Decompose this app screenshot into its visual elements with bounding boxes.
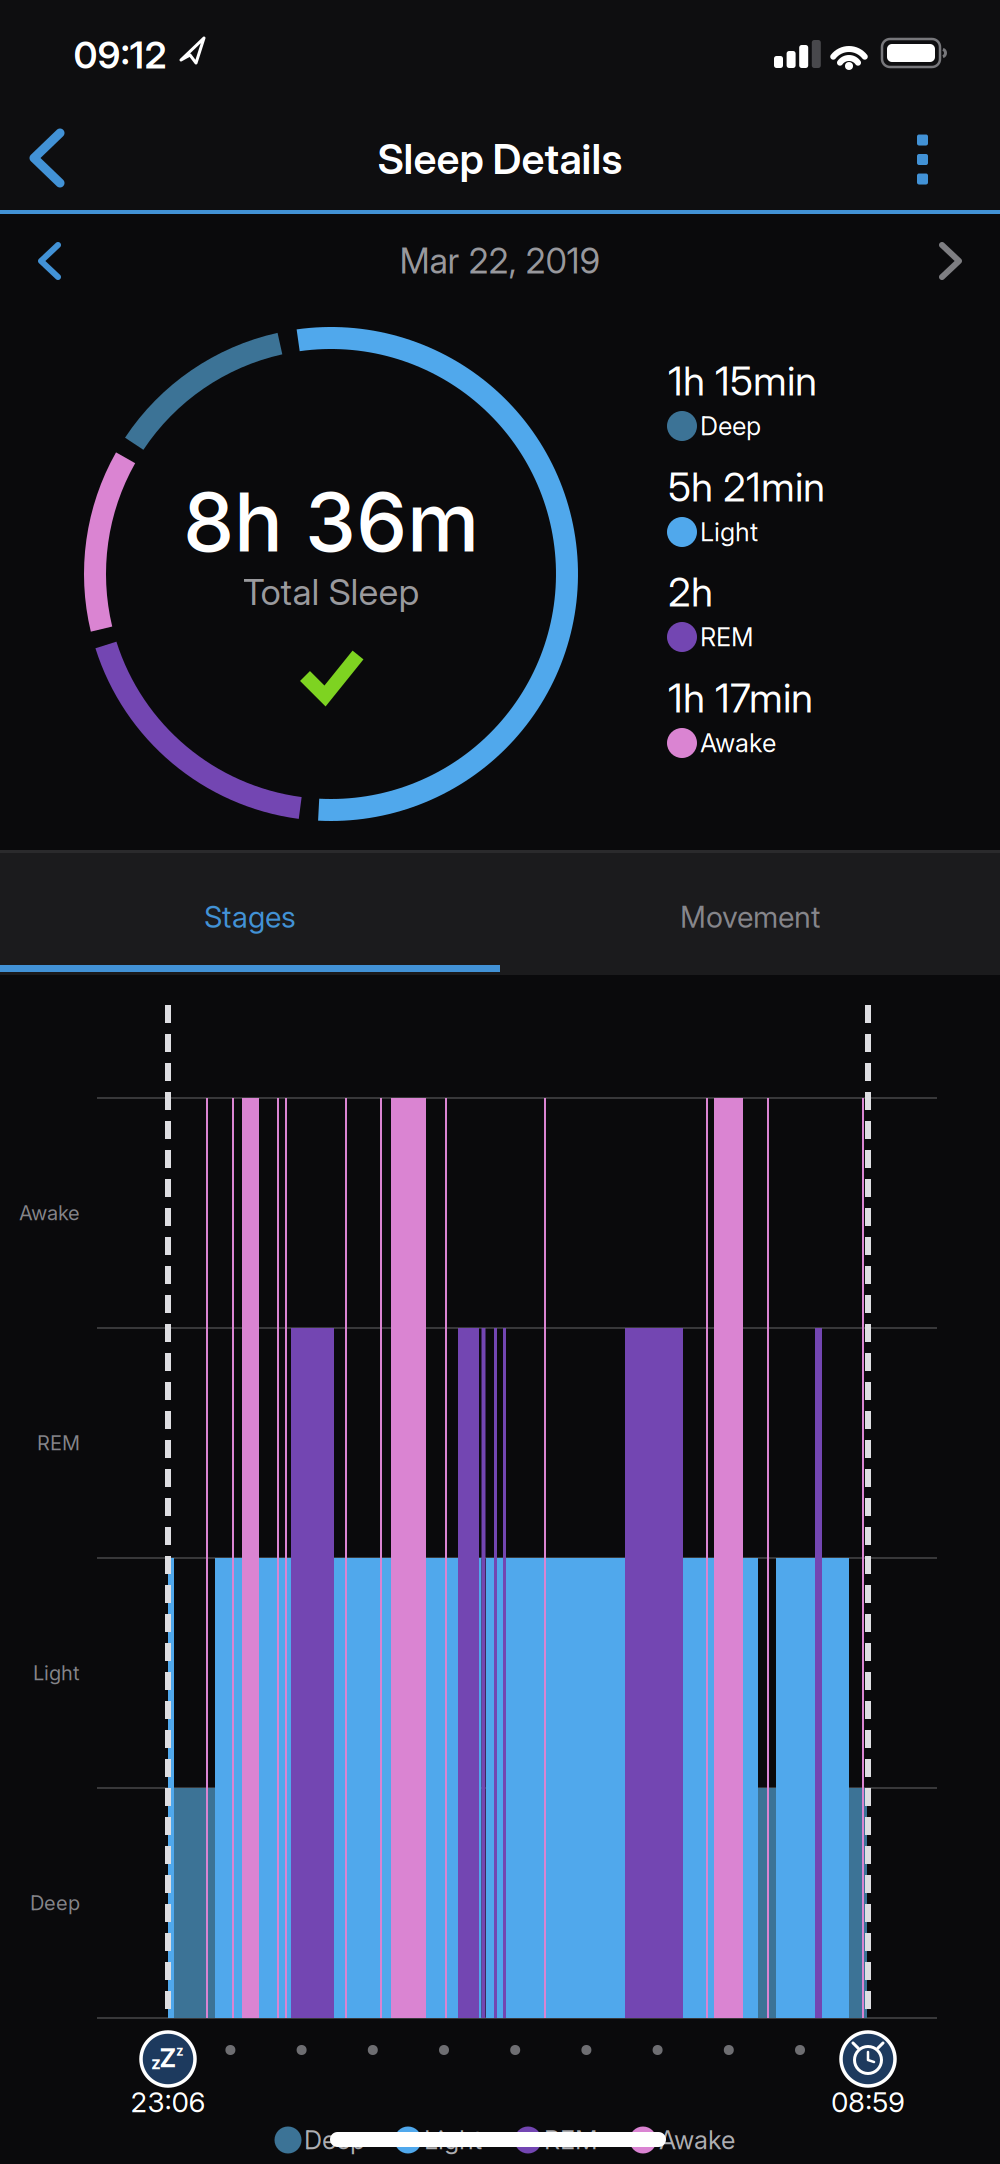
staticText: 2h <box>668 568 713 616</box>
staticText: Awake <box>700 728 776 758</box>
staticText: z <box>176 2043 184 2059</box>
staticText: Deep <box>30 1891 80 1915</box>
staticText: Deep <box>304 2125 365 2155</box>
staticText: 08:59 <box>831 2085 905 2118</box>
staticText: Z <box>159 2043 176 2073</box>
staticText: 23:06 <box>130 2085 205 2118</box>
staticText: Light <box>33 1661 80 1685</box>
staticText: 1h 15min <box>668 357 817 405</box>
staticText: Awake <box>19 1201 80 1225</box>
staticText: Awake <box>659 2125 735 2155</box>
staticText: Light <box>700 517 758 547</box>
staticText: 1h 17min <box>668 674 813 722</box>
staticText: 5h 21min <box>668 463 825 511</box>
staticText: Movement <box>680 900 820 934</box>
staticText: z <box>151 2053 161 2073</box>
staticText: Stages <box>204 900 296 934</box>
staticText: Sleep Details <box>377 135 622 183</box>
staticText: Deep <box>700 411 761 441</box>
staticText: Mar 22, 2019 <box>399 241 600 281</box>
staticText: Total Sleep <box>242 571 419 613</box>
staticText: Light <box>424 2125 482 2155</box>
staticText: 8h 36m <box>183 474 479 570</box>
staticText: REM <box>544 2125 598 2155</box>
staticText: REM <box>700 622 754 652</box>
staticText: 09:12 <box>73 33 166 77</box>
staticText: REM <box>37 1431 80 1455</box>
